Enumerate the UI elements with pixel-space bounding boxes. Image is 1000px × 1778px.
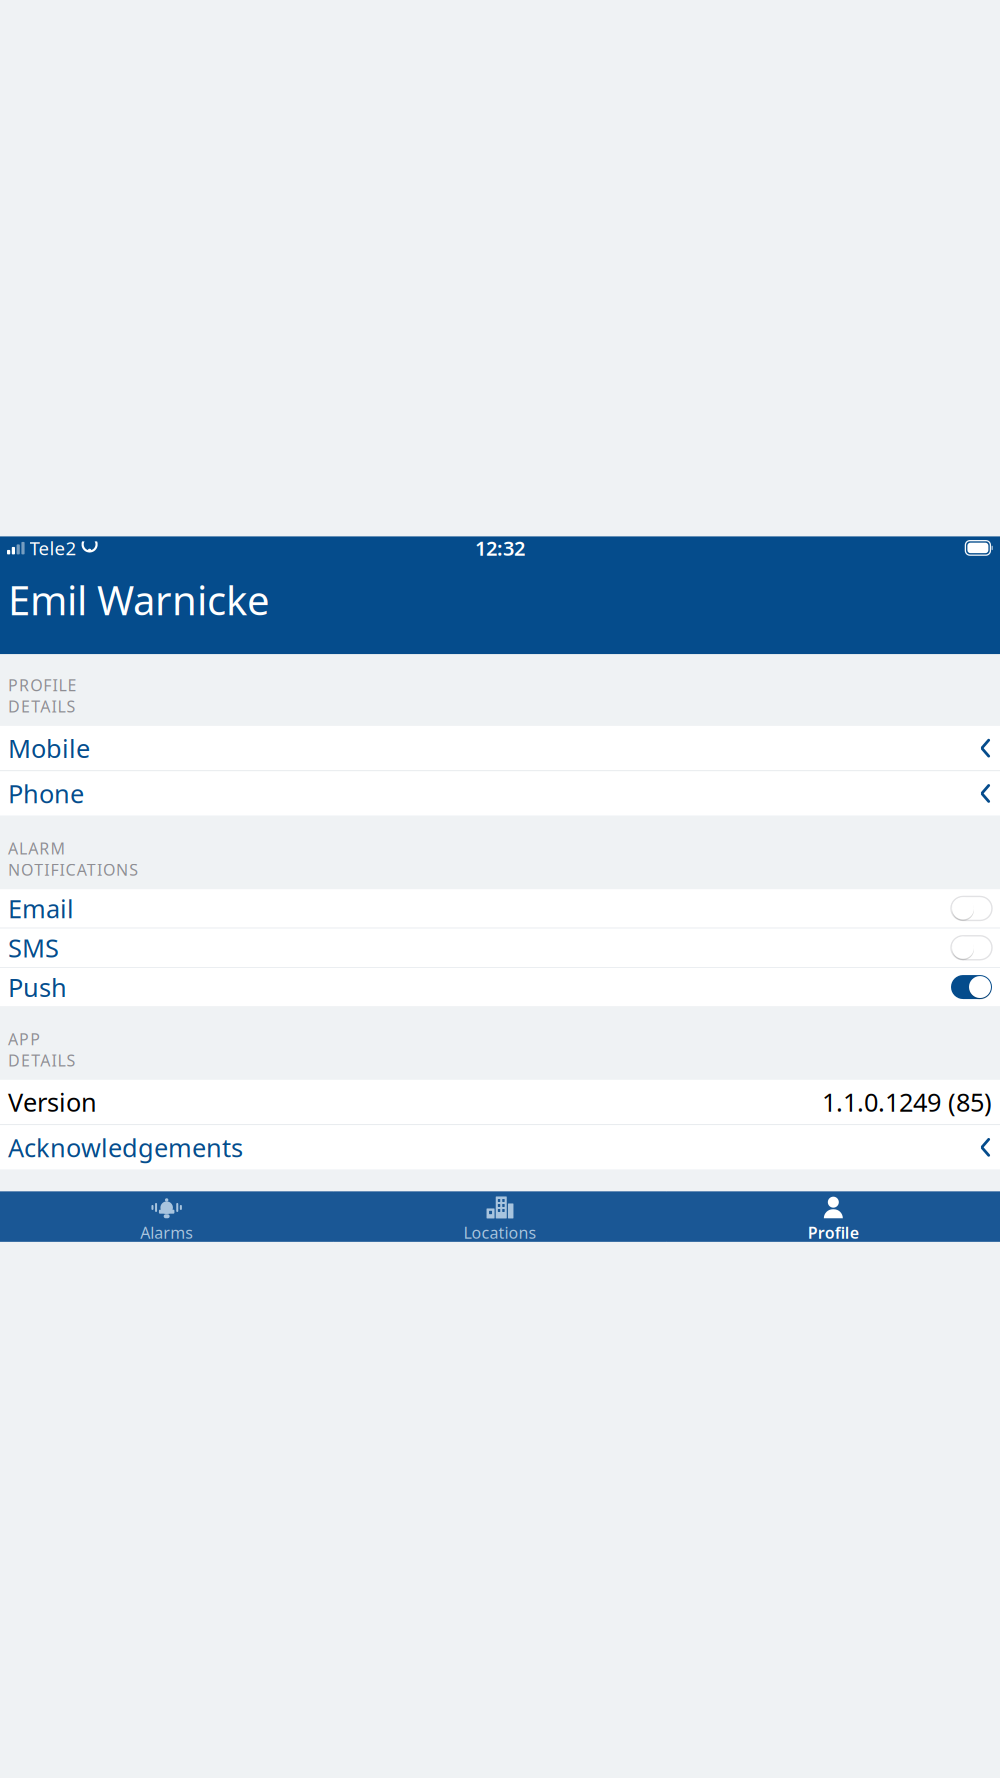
staticText: ALARM NOTIFICATIONS	[8, 838, 138, 880]
button[interactable]: Mobile	[0, 726, 1000, 770]
button[interactable]: SMS	[0, 928, 1000, 967]
button[interactable]: Email	[0, 889, 1000, 928]
staticText: Push	[8, 970, 67, 1004]
staticText: 12:32	[475, 535, 525, 561]
staticText: Tele2	[30, 535, 77, 560]
staticText: Alarms	[140, 1222, 193, 1243]
button[interactable]: Push	[0, 968, 1000, 1006]
staticText: Version	[8, 1085, 97, 1119]
button[interactable]: Acknowledgements	[0, 1125, 1000, 1170]
staticText: Phone	[8, 777, 84, 810]
staticText: SMS	[8, 931, 59, 964]
button[interactable]: Profile	[667, 1192, 1000, 1242]
button[interactable]: Locations	[333, 1192, 667, 1242]
staticText: Email	[8, 892, 74, 925]
staticText: 1.1.0.1249 (85)	[822, 1085, 992, 1119]
button[interactable]: Alarms	[0, 1192, 333, 1242]
staticText: Locations	[463, 1222, 536, 1243]
staticText: Mobile	[8, 731, 90, 765]
staticText: PROFILE DETAILS	[8, 674, 77, 717]
button[interactable]: Phone	[0, 771, 1000, 816]
staticText: Profile	[808, 1222, 859, 1243]
staticText: Acknowledgements	[8, 1130, 243, 1164]
staticText: APP DETAILS	[8, 1028, 76, 1071]
staticText: Emil Warnicke	[8, 573, 270, 626]
